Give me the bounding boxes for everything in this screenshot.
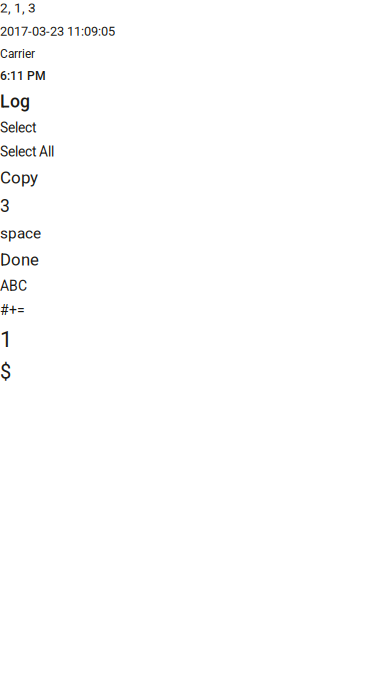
staticText: 3 [0, 196, 10, 216]
staticText: 2, 1, 3 [0, 0, 36, 16]
staticText: Copy [0, 168, 38, 188]
staticText: 1 [0, 326, 12, 352]
staticText: ABC [0, 278, 27, 294]
staticText: Select [0, 120, 36, 136]
staticText: Log [0, 91, 30, 112]
staticText: Done [0, 250, 39, 270]
staticText: 6:11 PM [0, 69, 46, 83]
staticText: Carrier [0, 47, 35, 61]
staticText: Select All [0, 144, 54, 160]
staticText: 2017-03-23 11:09:05 [0, 24, 115, 39]
staticText: #+= [0, 302, 25, 318]
staticText: $ [0, 360, 11, 384]
staticText: space [0, 224, 41, 242]
